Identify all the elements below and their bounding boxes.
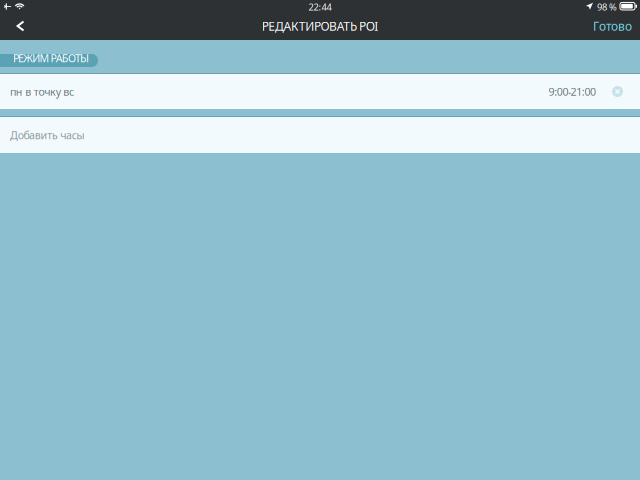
button[interactable]: Back	[0, 20, 38, 40]
staticText: Добавить часы	[10, 128, 84, 142]
staticText: Готово	[593, 18, 632, 34]
staticText: пн в точку вс	[10, 84, 74, 99]
staticText: 9:00-21:00	[549, 84, 596, 99]
staticText: 22:44	[308, 1, 331, 13]
button[interactable]: Готово	[577, 20, 640, 40]
staticText: РЕДАКТИРОВАТЬ POI	[262, 18, 378, 34]
staticText: РЕЖИМ РАБОТЫ	[13, 51, 89, 65]
button[interactable]: пн в точку вс	[0, 73, 640, 109]
button[interactable]: Добавить часы	[0, 116, 640, 153]
staticText: 98 %	[597, 1, 617, 13]
